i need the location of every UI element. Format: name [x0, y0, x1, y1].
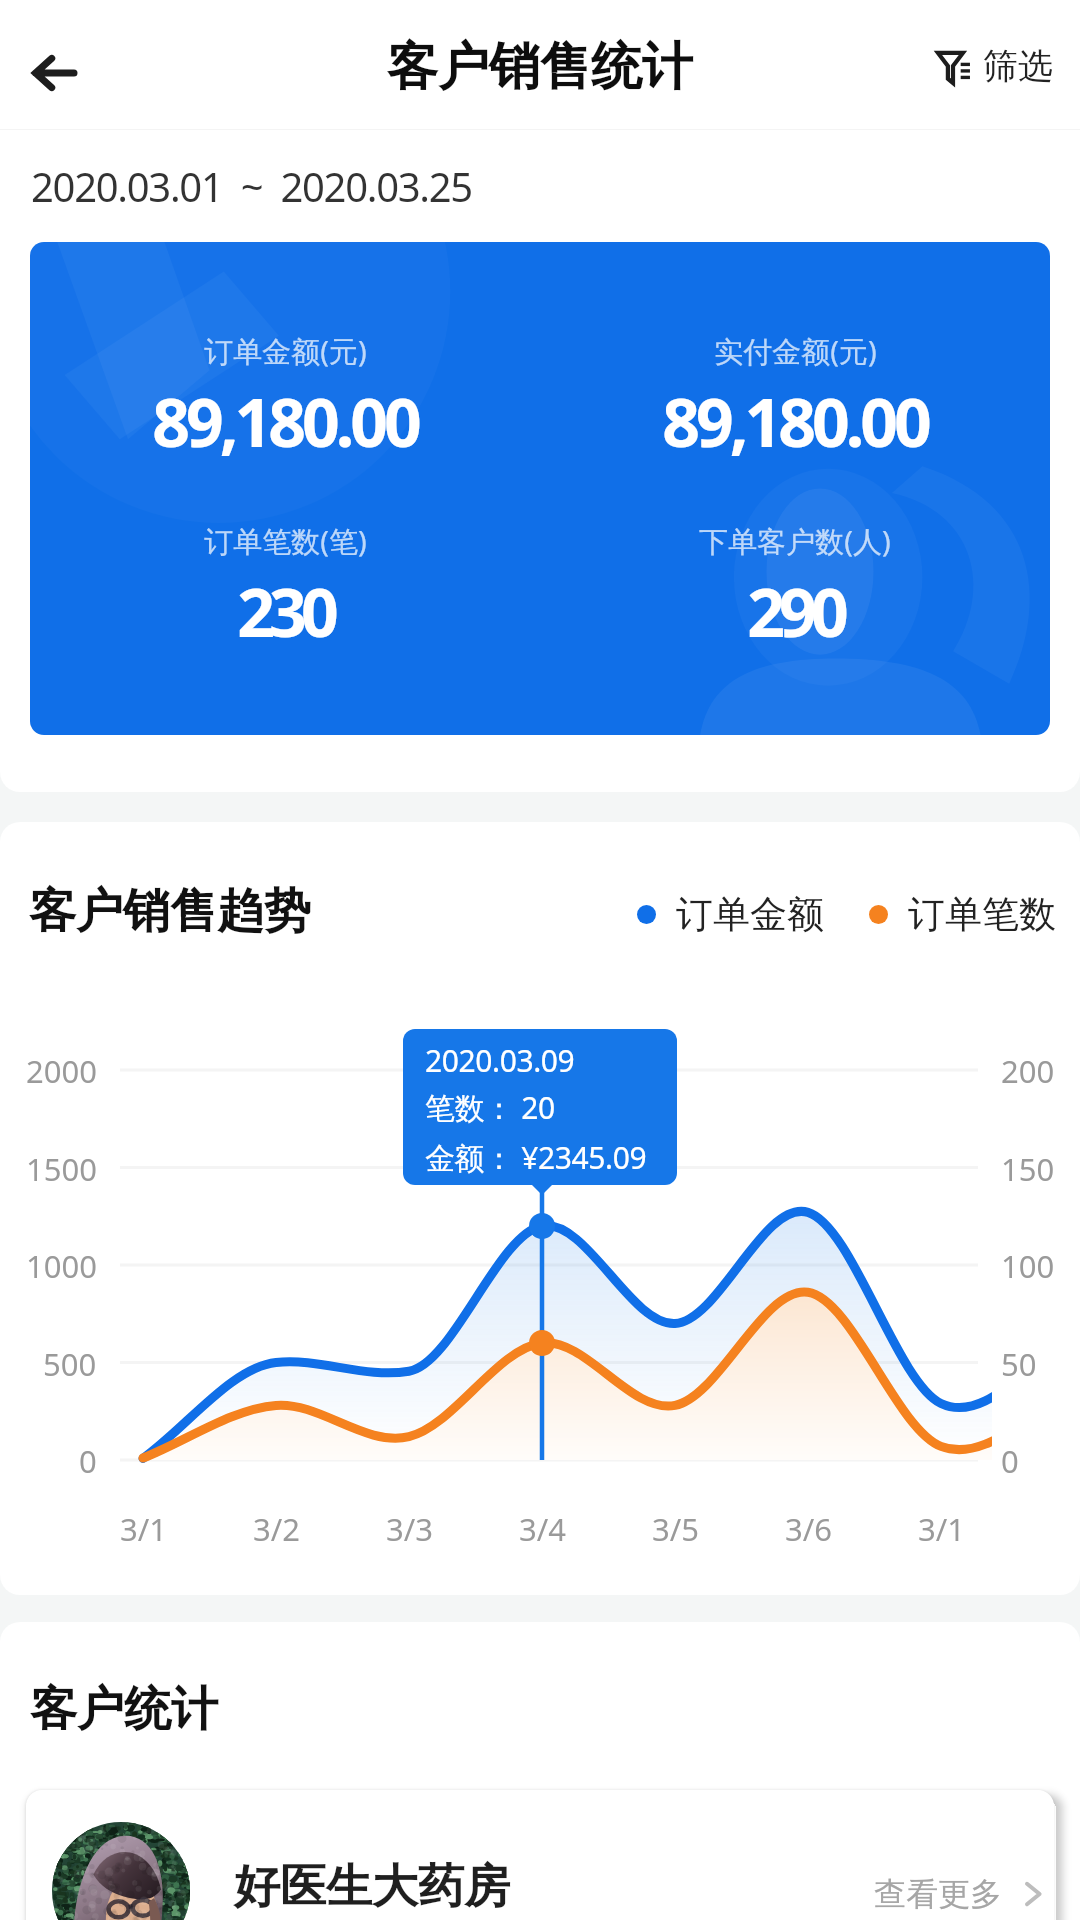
staticText: 笔数： 20 — [425, 1087, 555, 1128]
button[interactable]: 好医生大药房 — [26, 1790, 1054, 1920]
staticText: 150 — [1001, 1148, 1055, 1188]
staticText: 2000 — [26, 1050, 97, 1090]
staticText: 50 — [1001, 1343, 1037, 1383]
staticText: 3/2 — [253, 1508, 300, 1548]
staticText: 实付金额(元) — [714, 331, 877, 371]
staticText: 客户统计 — [30, 1680, 218, 1739]
staticText: 3/1 — [918, 1508, 965, 1548]
staticText: 1000 — [26, 1245, 97, 1285]
staticText: 2020.03.09 — [425, 1040, 575, 1081]
button[interactable]: 订单金额 — [637, 891, 824, 938]
staticText: 下单客户数(人) — [699, 521, 891, 561]
staticText: 3/4 — [519, 1508, 566, 1548]
staticText: 0 — [79, 1440, 97, 1480]
staticText: 3/5 — [652, 1508, 699, 1548]
staticText: 500 — [43, 1343, 97, 1383]
button[interactable]: 订单笔数 — [869, 891, 1056, 938]
staticText: 筛选 — [983, 44, 1053, 88]
staticText: 200 — [1001, 1050, 1055, 1090]
staticText: 客户销售趋势 — [29, 882, 311, 941]
staticText: 好医生大药房 — [234, 1858, 510, 1916]
staticText: 1500 — [26, 1148, 97, 1188]
staticText: 金额： ¥2345.09 — [425, 1137, 647, 1178]
staticText: 89,180.00 — [152, 376, 418, 466]
staticText: 3/6 — [785, 1508, 832, 1548]
staticText: 0 — [1001, 1440, 1019, 1480]
staticText: 订单笔数(笔) — [204, 521, 367, 561]
button[interactable]: Back — [8, 26, 98, 116]
staticText: 订单笔数 — [908, 891, 1056, 938]
staticText: 查看更多 — [874, 1874, 1002, 1914]
button[interactable]: 筛选 — [912, 14, 1072, 116]
staticText: 230 — [237, 566, 333, 656]
staticText: 290 — [747, 566, 843, 656]
staticText: 2020.03.01 ~ 2020.03.25 — [31, 159, 472, 213]
staticText: 89,180.00 — [662, 376, 928, 466]
staticText: 100 — [1001, 1245, 1055, 1285]
staticText: 3/1 — [120, 1508, 167, 1548]
staticText: 订单金额 — [676, 891, 824, 938]
staticText: 客户销售统计 — [387, 35, 693, 99]
staticText: 3/3 — [386, 1508, 433, 1548]
staticText: 订单金额(元) — [204, 331, 367, 371]
